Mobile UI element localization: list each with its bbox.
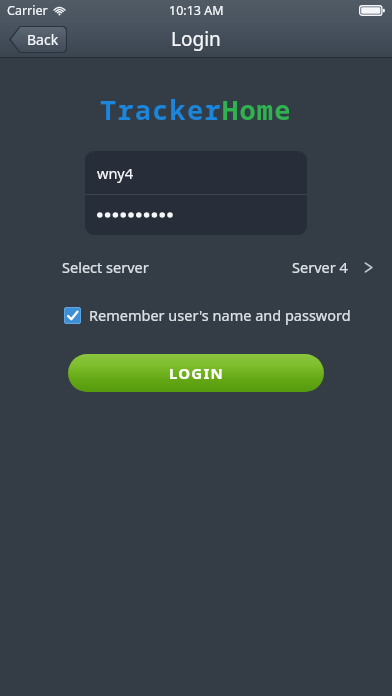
button[interactable]: Select server [0,252,392,282]
staticText: Server 4 [292,257,348,277]
staticText: Remember user's name and password [89,305,351,325]
staticText: LOGIN [169,363,224,383]
button[interactable]: Back [9,26,67,53]
staticText: Tracker [100,91,222,128]
button[interactable]: wny4 [85,151,307,194]
button[interactable]: LOGIN [68,354,324,392]
button[interactable] [85,195,307,235]
staticText: Login [171,26,221,52]
staticText: wny4 [97,163,134,183]
staticText: Home [222,91,292,128]
staticText: Select server [62,257,149,277]
button[interactable]: Remember user's name and password [64,302,372,328]
staticText: 10:13 AM [169,2,224,19]
staticText: Carrier [7,2,48,19]
staticText: Back [27,30,59,49]
